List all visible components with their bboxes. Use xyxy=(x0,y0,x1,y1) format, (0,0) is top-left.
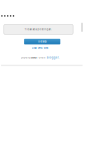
button[interactable]: Blogger xyxy=(47,56,59,59)
staticText: Tidak ada postingan. xyxy=(24,28,52,31)
staticText: Lihat versi web xyxy=(32,47,49,50)
staticText: Blogger xyxy=(47,56,59,59)
staticText: Diberdayakan oleh xyxy=(21,56,47,59)
button[interactable]: Beranda xyxy=(24,39,60,44)
staticText: Beranda xyxy=(38,40,46,43)
button[interactable]: Lihat versi web xyxy=(32,47,49,50)
staticText: . xyxy=(59,56,60,59)
